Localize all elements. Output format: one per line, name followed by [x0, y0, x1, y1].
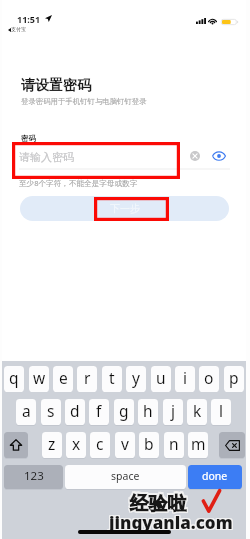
button[interactable]: s — [41, 399, 61, 425]
button[interactable]: f — [89, 399, 109, 425]
button[interactable]: h — [138, 399, 158, 425]
button[interactable]: Shift — [4, 432, 28, 458]
staticText: 请输入密码 — [19, 150, 74, 164]
staticText: jingyanla.com — [110, 510, 234, 533]
staticText: b — [144, 433, 154, 454]
staticText: m — [191, 433, 206, 454]
staticText: x — [72, 433, 81, 454]
staticText: y — [132, 367, 140, 388]
button[interactable]: d — [65, 399, 85, 425]
staticText: o — [204, 367, 214, 388]
button[interactable]: done — [188, 465, 242, 489]
staticText: jingyanla.com — [109, 511, 233, 534]
button[interactable]: Backspace — [219, 432, 245, 458]
staticText: 经验啦 — [131, 493, 188, 517]
staticText: a — [22, 400, 31, 421]
staticText: 经验啦 — [131, 492, 188, 516]
staticText: 经验啦 — [129, 493, 186, 517]
staticText: 下一步 — [110, 202, 140, 215]
staticText: h — [143, 400, 153, 421]
button[interactable]: t — [102, 366, 122, 392]
staticText: t — [109, 367, 115, 388]
button[interactable]: Show password — [212, 149, 226, 163]
staticText: jingyanla.com — [108, 510, 232, 533]
button[interactable]: l — [211, 399, 231, 425]
staticText: 经验啦 — [131, 490, 188, 514]
staticText: jingyanla.com — [109, 512, 233, 535]
button[interactable]: e — [53, 366, 73, 392]
staticText: 支付宝 — [11, 26, 26, 32]
staticText: j — [171, 400, 175, 421]
staticText: 经验啦 — [129, 490, 186, 514]
staticText: f — [96, 400, 102, 421]
staticText: jingyanla.com — [109, 510, 233, 533]
button[interactable]: n — [164, 432, 184, 458]
button[interactable]: v — [115, 432, 135, 458]
staticText: r — [84, 367, 91, 388]
button[interactable]: c — [90, 432, 110, 458]
button[interactable]: m — [188, 432, 208, 458]
staticText: u — [156, 367, 166, 388]
button[interactable]: g — [114, 399, 134, 425]
staticText: e — [59, 367, 68, 388]
staticText: n — [169, 433, 179, 454]
staticText: 请设置密码 — [21, 77, 91, 95]
button[interactable]: b — [139, 432, 159, 458]
staticText: 经验啦 — [130, 490, 187, 514]
button[interactable]: u — [151, 366, 171, 392]
button[interactable]: w — [29, 366, 49, 392]
staticText: jingyanla.com — [110, 512, 234, 535]
button[interactable]: i — [175, 366, 195, 392]
staticText: 密码 — [21, 134, 36, 143]
staticText: d — [70, 400, 80, 421]
staticText: jingyanla.com — [110, 511, 234, 534]
button[interactable]: 123 — [4, 465, 63, 489]
staticText: 经验啦 — [129, 492, 186, 516]
button[interactable]: j — [163, 399, 183, 425]
staticText: jingyanla.com — [108, 512, 232, 535]
staticText: space — [111, 469, 140, 483]
button[interactable]: y — [126, 366, 146, 392]
staticText: g — [119, 400, 129, 421]
button[interactable]: 下一步 — [20, 196, 229, 221]
button[interactable]: k — [187, 399, 207, 425]
staticText: w — [33, 367, 46, 388]
staticText: 经验啦 — [130, 492, 187, 516]
staticText: p — [229, 367, 239, 388]
staticText: done — [202, 469, 228, 483]
staticText: k — [193, 400, 202, 421]
staticText: z — [48, 433, 56, 454]
staticText: s — [47, 400, 55, 421]
button[interactable]: a — [16, 399, 36, 425]
staticText: v — [121, 433, 129, 454]
staticText: 123 — [24, 468, 44, 484]
staticText: 登录密码用于手机钉钉与电脑钉钉登录 — [21, 97, 147, 106]
button[interactable]: q — [4, 366, 24, 392]
staticText: 至少8个字符，不能全是字母或数字 — [19, 178, 138, 188]
button[interactable]: Clear — [190, 151, 200, 161]
button[interactable]: x — [66, 432, 86, 458]
button[interactable]: o — [199, 366, 219, 392]
staticText: q — [9, 367, 19, 388]
staticText: jingyanla.com — [108, 511, 232, 534]
staticText: 经验啦 — [130, 493, 187, 517]
button[interactable]: z — [42, 432, 62, 458]
button[interactable]: p — [224, 366, 244, 392]
button[interactable]: r — [77, 366, 97, 392]
staticText: i — [183, 367, 187, 388]
staticText: 11:51 — [17, 13, 41, 25]
button[interactable]: space — [65, 465, 186, 489]
staticText: c — [96, 433, 104, 454]
staticText: l — [219, 400, 223, 421]
